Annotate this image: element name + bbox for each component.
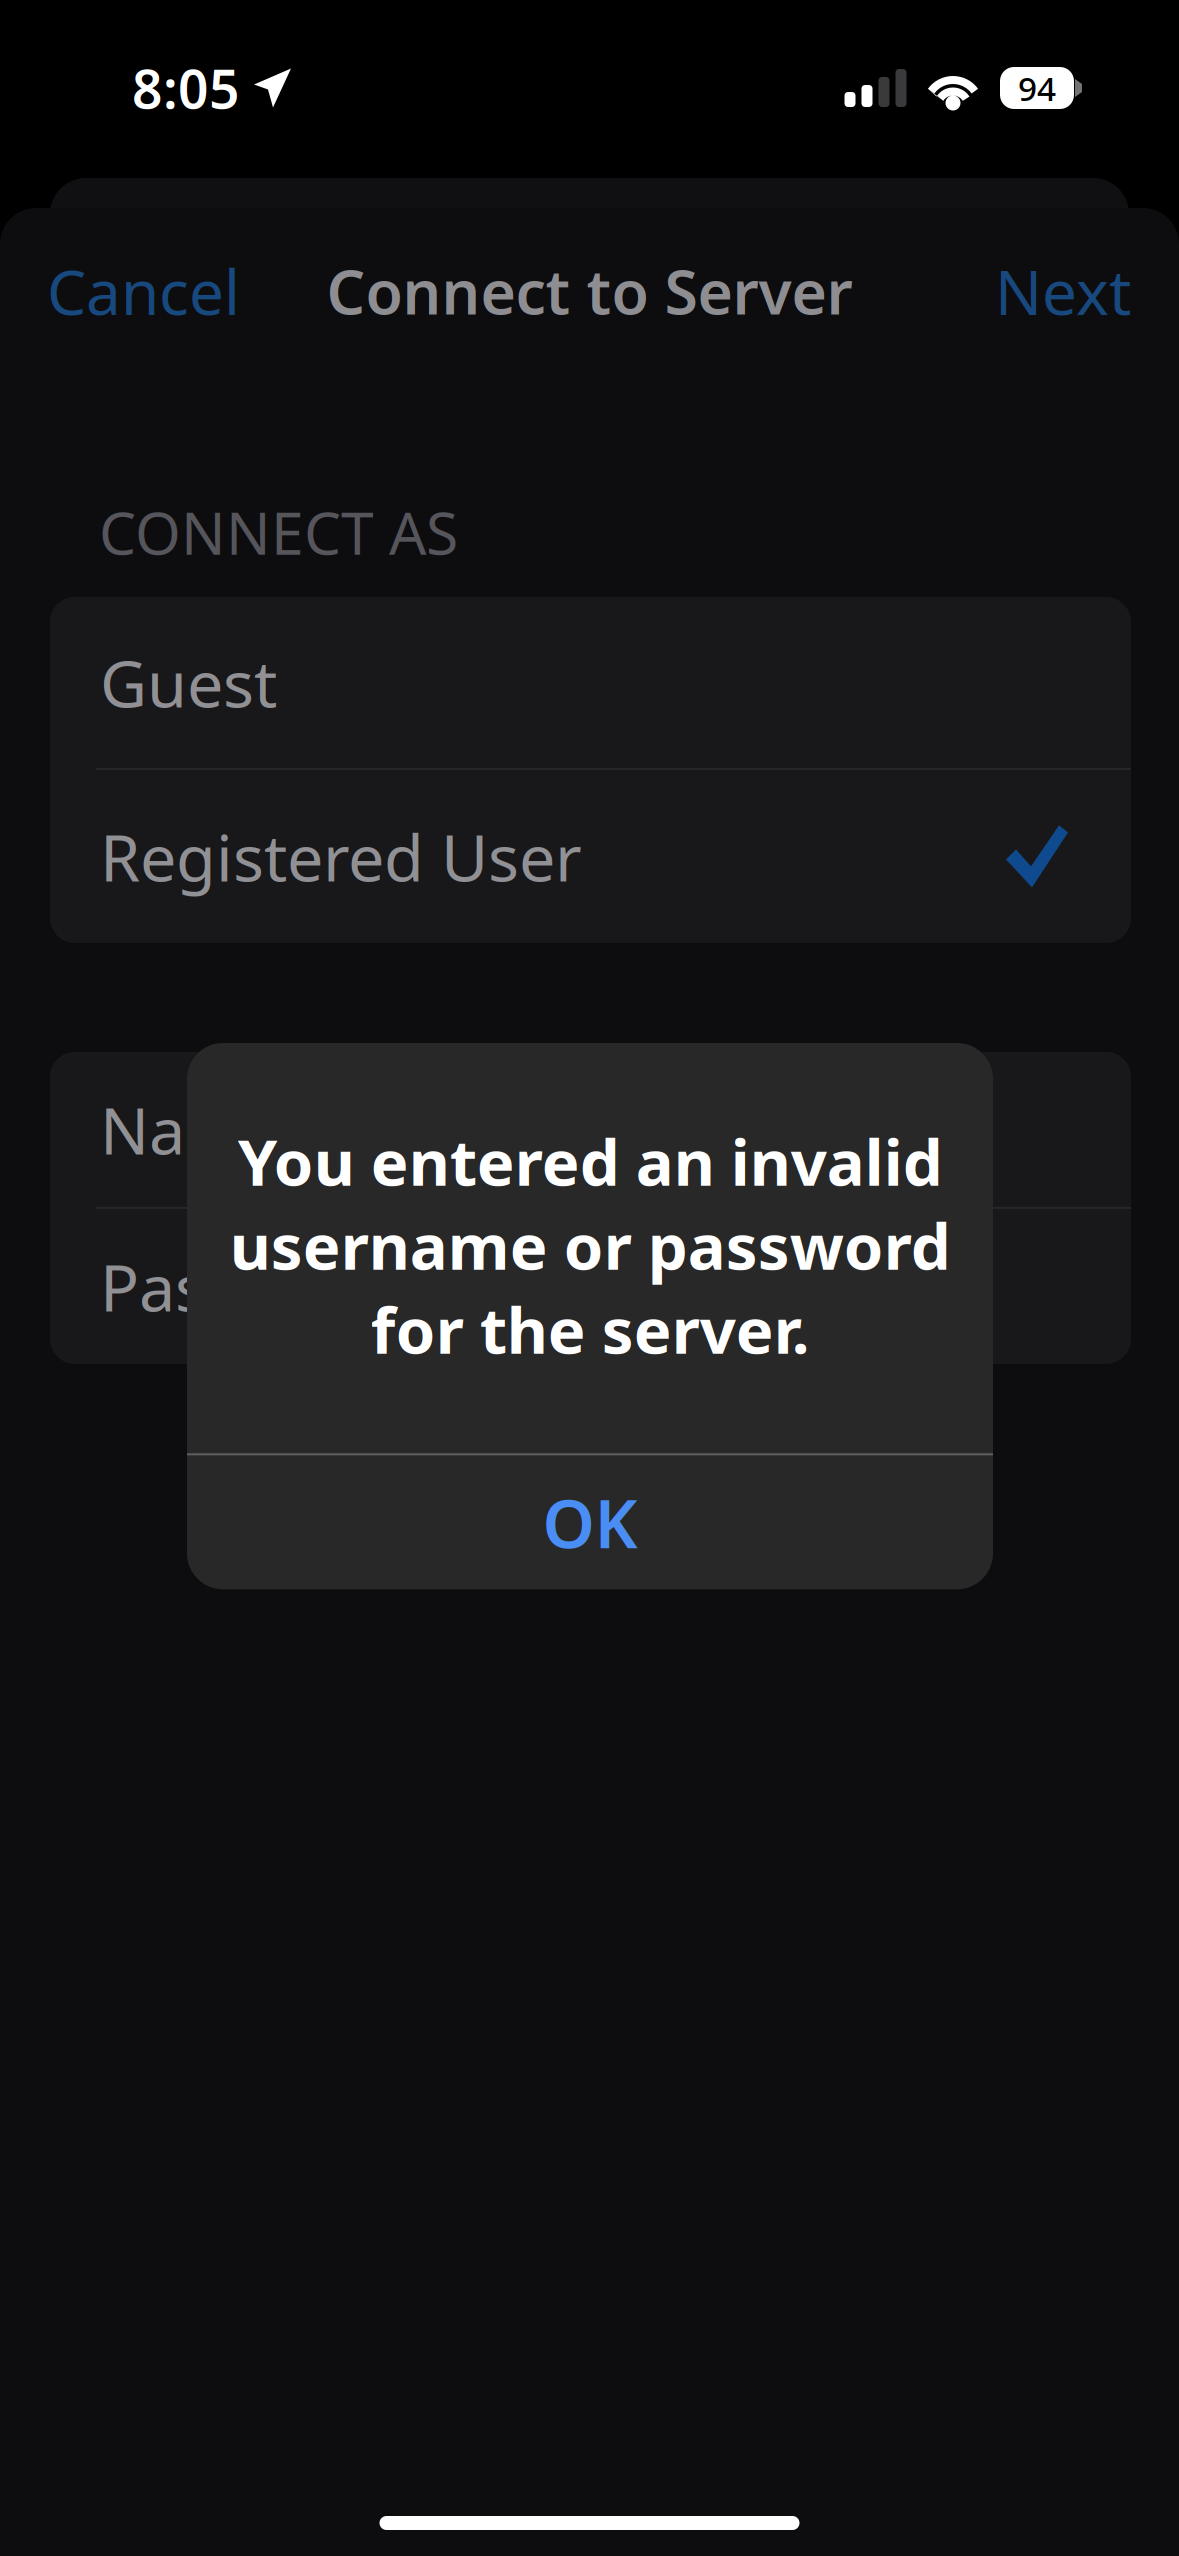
button[interactable]: Cancel — [47, 224, 260, 358]
button[interactable]: Name — [50, 1052, 1131, 1207]
button[interactable]: Next — [975, 224, 1131, 358]
staticText: Registered User — [100, 813, 582, 899]
staticText: OK — [542, 1478, 637, 1566]
staticText: You entered an invalid username or passw… — [229, 1119, 950, 1371]
staticText: Cancel — [47, 250, 240, 332]
staticText: Next — [995, 250, 1131, 332]
button[interactable]: OK — [187, 1455, 993, 1589]
button[interactable]: Password — [50, 1209, 1131, 1364]
staticText: 94 — [1018, 66, 1056, 110]
staticText: CONNECT AS — [99, 493, 458, 571]
staticText: Connect to Server — [326, 251, 852, 331]
staticText: Guest — [100, 639, 277, 725]
button[interactable]: Guest — [50, 597, 1131, 768]
staticText: Name — [100, 1086, 281, 1172]
button[interactable]: Registered User — [50, 770, 1131, 943]
staticText: Password — [100, 1243, 392, 1329]
staticText: 8:05 — [132, 53, 240, 123]
